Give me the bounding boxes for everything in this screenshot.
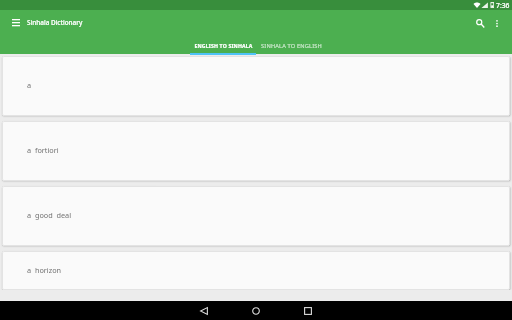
- button[interactable]: ENGLISH TO SINHALA: [190, 36, 256, 55]
- staticText: a fortiori: [27, 145, 59, 155]
- button[interactable]: a horizon: [2, 251, 510, 290]
- button[interactable]: a good deal: [2, 186, 510, 246]
- button[interactable]: Recent apps: [288, 301, 328, 320]
- staticText: ENGLISH TO SINHALA: [194, 42, 253, 49]
- button[interactable]: SINHALA TO ENGLISH: [258, 36, 324, 55]
- button[interactable]: a: [2, 56, 510, 116]
- button[interactable]: More options: [488, 12, 506, 34]
- button[interactable]: Search: [470, 12, 491, 34]
- staticText: SINHALA TO ENGLISH: [261, 42, 322, 50]
- button[interactable]: a fortiori: [2, 121, 510, 181]
- button[interactable]: Back: [184, 301, 224, 320]
- staticText: Sinhala Dictionary: [27, 18, 83, 27]
- staticText: a horizon: [27, 265, 62, 275]
- staticText: a good deal: [27, 210, 72, 220]
- button[interactable]: Open navigation drawer: [6, 11, 26, 33]
- staticText: 7:36: [496, 1, 510, 9]
- staticText: a: [27, 80, 32, 90]
- button[interactable]: Home: [236, 301, 276, 320]
